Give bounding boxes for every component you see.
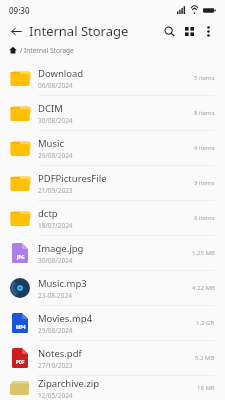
button[interactable]: Grid view	[181, 23, 198, 40]
button[interactable]: DCIM	[0, 96, 225, 130]
button[interactable]: PDF	[0, 341, 225, 375]
staticText: 6 items	[194, 214, 215, 222]
staticText: 5.2 MB	[195, 354, 215, 362]
button[interactable]: MP4	[0, 306, 225, 340]
staticText: 12/05/2024	[38, 391, 73, 400]
staticText: 09:30	[9, 5, 30, 16]
staticText: 23-08-2024	[38, 291, 72, 300]
staticText: Movies.mp4	[38, 312, 93, 325]
staticText: JPG	[17, 254, 25, 260]
button[interactable]: dctp	[0, 201, 225, 235]
staticText: 21/09/2023	[38, 186, 73, 195]
button[interactable]: Download	[0, 61, 225, 95]
staticText: PDFPicturesFile	[38, 172, 107, 185]
button[interactable]: Search	[161, 23, 178, 40]
staticText: dctp	[38, 207, 58, 220]
staticText: 5 items	[194, 74, 215, 82]
button[interactable]: Music.mp3	[0, 271, 225, 305]
staticText: 18 MB	[197, 384, 215, 392]
button[interactable]: Back	[8, 23, 24, 39]
staticText: / Internal Storage	[20, 46, 74, 55]
staticText: 06/08/2024	[38, 81, 73, 90]
staticText: Music	[38, 137, 65, 150]
button[interactable]: Ziparchive.zip	[0, 376, 225, 400]
staticText: 8 items	[194, 109, 215, 117]
staticText: Notes.pdf	[38, 347, 82, 360]
staticText: 29/08/2024	[38, 151, 73, 160]
staticText: 1.25 MB	[192, 249, 215, 257]
staticText: 1.2 GB	[196, 319, 215, 327]
staticText: 4.22 MB	[192, 284, 215, 292]
staticText: 3 items	[194, 179, 215, 187]
button[interactable]: PDFPicturesFile	[0, 166, 225, 200]
staticText: 18/07/2024	[38, 221, 73, 230]
button[interactable]: JPG	[0, 236, 225, 270]
staticText: MP4	[16, 324, 26, 330]
button[interactable]: Music	[0, 131, 225, 165]
staticText: 4 items	[194, 144, 215, 152]
button[interactable]: More options	[200, 23, 216, 39]
staticText: Ziparchive.zip	[38, 377, 100, 390]
staticText: Music.mp3	[38, 277, 87, 290]
staticText: 27/10/2023	[38, 361, 73, 370]
staticText: Download	[38, 67, 84, 80]
staticText: Internal Storage	[29, 22, 129, 40]
staticText: 30/08/2024	[38, 256, 73, 265]
staticText: PDF	[16, 359, 25, 365]
staticText: Image.jpg	[38, 242, 84, 255]
staticText: 29/08/2024	[38, 326, 73, 335]
staticText: DCIM	[38, 102, 63, 115]
staticText: 30/08/2024	[38, 116, 73, 125]
